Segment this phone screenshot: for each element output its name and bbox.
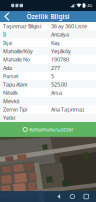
button[interactable]: Recents: [79, 191, 93, 202]
staticText: Ada: [3, 64, 12, 71]
staticText: Arsa: [51, 89, 62, 96]
staticText: Mahalle No: [3, 56, 30, 63]
staticText: 36 ay 360 Liste: [51, 23, 87, 30]
staticText: Mahalle/Köy: [3, 48, 33, 55]
staticText: Taşınmaz Bilgisi: [3, 23, 41, 30]
staticText: Tapu Alanı: [3, 81, 27, 88]
staticText: Nitelik: [3, 89, 18, 96]
staticText: Kaş: [51, 39, 60, 46]
staticText: 277: [51, 64, 60, 71]
staticText: 525.00: [51, 81, 67, 88]
staticText: Parsel: [3, 73, 18, 80]
staticText: Mevkii: [3, 98, 19, 105]
staticText: İlçe: [3, 39, 12, 46]
staticText: Yeşilköy: [51, 48, 71, 55]
button[interactable]: Home: [65, 191, 79, 202]
staticText: 4G: [87, 3, 92, 8]
staticText: 5: [51, 73, 54, 80]
staticText: Zemin Tipi: [3, 106, 27, 113]
button[interactable]: Back: [52, 191, 65, 202]
staticText: Özellik Bilgisi: [26, 12, 69, 21]
button[interactable]: Back: [0, 11, 13, 22]
staticText: Yetki: [3, 114, 15, 121]
staticText: Konumunu Göster: [29, 126, 73, 133]
staticText: İl: [3, 31, 6, 38]
button[interactable]: Konumunu Göster: [0, 122, 96, 137]
staticText: Antalya: [51, 31, 69, 38]
staticText: Ana Taşınmaz: [51, 106, 85, 113]
staticText: 190780: [51, 56, 69, 63]
